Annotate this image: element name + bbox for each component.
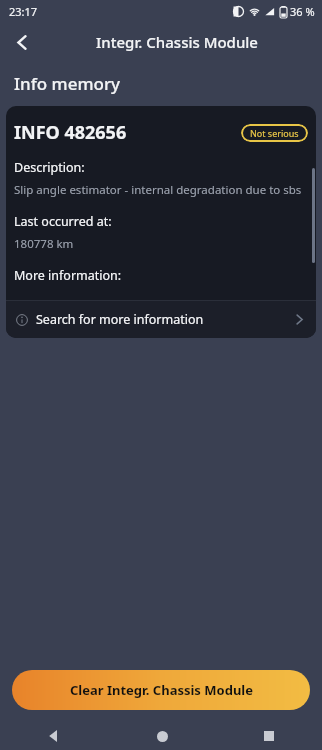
button[interactable]: Home <box>142 722 182 750</box>
staticText: Info memory <box>14 72 121 95</box>
staticText: Search for more information <box>36 311 204 328</box>
staticText: Clear Integr. Chassis Module <box>70 681 253 699</box>
staticText: INFO 482656 <box>14 120 127 145</box>
staticText: Slip angle estimator - internal degradat… <box>14 182 302 198</box>
staticText: More information: <box>14 267 122 284</box>
button[interactable]: Clear Integr. Chassis Module <box>12 670 310 710</box>
staticText: Description: <box>14 159 85 176</box>
staticText: 36 % <box>290 4 315 19</box>
staticText: 180778 km <box>14 236 74 252</box>
button[interactable]: Back <box>34 722 74 750</box>
button[interactable]: Back <box>0 22 44 62</box>
staticText: Integr. Chassis Module <box>96 32 258 52</box>
button[interactable]: Recent apps <box>249 722 289 750</box>
staticText: 23:17 <box>9 4 38 19</box>
staticText: Last occurred at: <box>14 213 112 230</box>
staticText: Not serious <box>250 127 299 139</box>
button[interactable]: Search for more information <box>6 301 316 338</box>
